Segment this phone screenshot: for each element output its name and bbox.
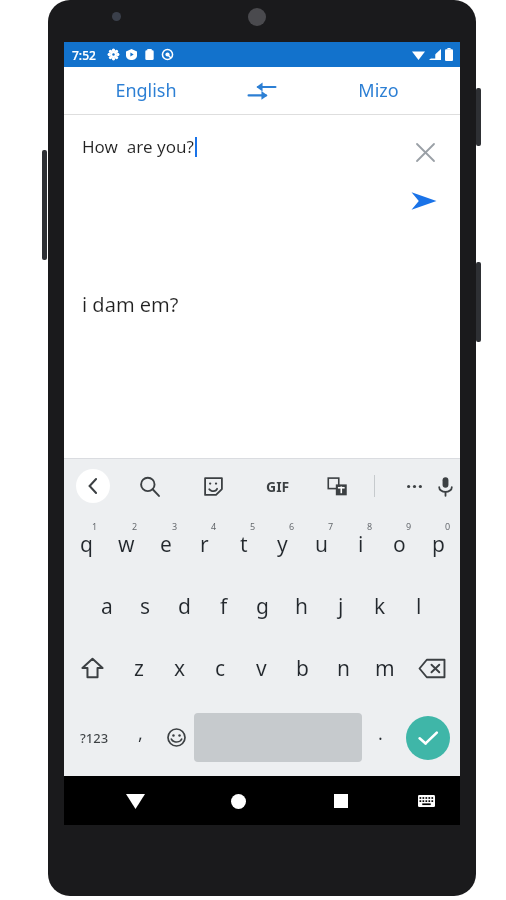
button[interactable]: b <box>282 637 323 699</box>
button[interactable]: v <box>241 637 282 699</box>
button[interactable]: c <box>200 637 241 699</box>
button[interactable]: Translate <box>402 179 446 223</box>
button[interactable]: Hide keyboard <box>112 778 158 824</box>
staticText: r <box>200 530 209 559</box>
button[interactable]: GIF <box>258 469 298 503</box>
staticText: q <box>80 530 93 559</box>
button[interactable]: t <box>224 513 263 575</box>
button[interactable]: Change keyboard <box>406 781 446 821</box>
button[interactable]: q <box>66 513 106 575</box>
staticText: How are you? <box>82 135 194 158</box>
staticText: 1 <box>92 520 98 532</box>
button[interactable]: h <box>282 575 321 637</box>
button[interactable]: l <box>399 575 438 637</box>
button[interactable]: k <box>360 575 399 637</box>
staticText: , <box>138 721 143 746</box>
button[interactable]: Recent apps <box>318 778 364 824</box>
button[interactable]: Stickers <box>196 469 230 503</box>
button[interactable]: g <box>243 575 282 637</box>
button[interactable]: d <box>165 575 204 637</box>
staticText: k <box>374 592 386 621</box>
staticText: l <box>416 592 422 621</box>
button[interactable]: o <box>380 513 419 575</box>
button[interactable]: Mizo <box>297 67 460 114</box>
staticText: a <box>101 592 113 621</box>
button[interactable]: u <box>302 513 341 575</box>
button[interactable]: j <box>321 575 360 637</box>
staticText: e <box>160 530 172 559</box>
button[interactable]: x <box>159 637 200 699</box>
staticText: g <box>256 592 269 621</box>
button[interactable]: , <box>122 699 158 776</box>
button[interactable]: . <box>362 699 398 776</box>
staticText: 5 <box>250 520 256 532</box>
button[interactable]: e <box>146 513 185 575</box>
staticText: 3 <box>172 520 178 532</box>
staticText: c <box>215 654 226 683</box>
staticText: j <box>338 592 344 621</box>
button[interactable]: Backspace <box>405 637 458 699</box>
staticText: x <box>174 654 186 683</box>
button[interactable]: Emoji <box>158 699 194 776</box>
button[interactable]: Voice input <box>431 469 460 503</box>
button[interactable]: i <box>341 513 380 575</box>
staticText: h <box>295 592 308 621</box>
button[interactable]: Swap languages <box>227 67 297 114</box>
staticText: t <box>240 530 248 559</box>
staticText: o <box>393 530 406 559</box>
staticText: b <box>296 654 309 683</box>
staticText: 2 <box>132 520 138 532</box>
button[interactable]: a <box>87 575 126 637</box>
staticText: s <box>140 592 151 621</box>
staticText: p <box>432 530 445 559</box>
staticText: Mizo <box>358 78 399 103</box>
button[interactable]: Shift <box>66 637 118 699</box>
button[interactable]: s <box>126 575 165 637</box>
staticText: n <box>337 654 350 683</box>
staticText: w <box>118 530 135 559</box>
staticText: 6 <box>289 520 295 532</box>
button[interactable]: More options <box>397 469 431 503</box>
staticText: 7:52 <box>72 47 96 63</box>
staticText: . <box>378 721 383 746</box>
staticText: f <box>220 592 228 621</box>
button[interactable]: w <box>106 513 146 575</box>
button[interactable]: z <box>118 637 159 699</box>
button[interactable]: English <box>64 67 227 114</box>
staticText: u <box>315 530 328 559</box>
button[interactable]: Search <box>132 469 166 503</box>
button[interactable]: Home <box>215 778 261 824</box>
button[interactable]: ?123 <box>66 699 122 776</box>
button[interactable]: f <box>204 575 243 637</box>
button[interactable]: m <box>364 637 405 699</box>
staticText: 0 <box>445 520 451 532</box>
staticText: z <box>134 654 144 683</box>
button[interactable]: Back <box>76 469 110 503</box>
staticText: i dam em? <box>82 291 179 318</box>
staticText: y <box>277 530 288 559</box>
staticText: 4 <box>211 520 217 532</box>
button[interactable]: Clear text <box>408 135 442 169</box>
staticText: i <box>358 530 364 559</box>
button[interactable]: Done <box>398 699 458 776</box>
staticText: d <box>178 592 191 621</box>
staticText: 8 <box>367 520 373 532</box>
staticText: ?123 <box>80 729 109 747</box>
button[interactable]: Translate <box>320 469 354 503</box>
staticText: GIF <box>266 477 290 496</box>
button[interactable]: y <box>263 513 302 575</box>
staticText: m <box>375 654 395 683</box>
staticText: English <box>115 78 177 103</box>
staticText: 9 <box>406 520 412 532</box>
staticText: v <box>256 654 267 683</box>
button[interactable]: r <box>185 513 224 575</box>
button[interactable]: n <box>323 637 364 699</box>
staticText: 7 <box>328 520 334 532</box>
button[interactable]: p <box>419 513 458 575</box>
